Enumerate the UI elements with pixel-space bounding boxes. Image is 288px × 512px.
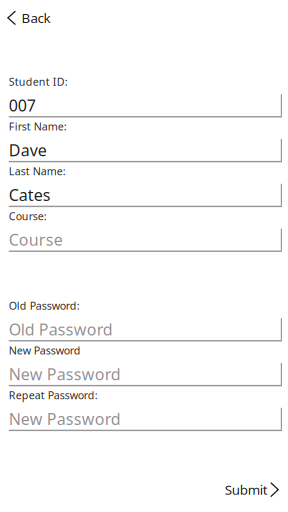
button[interactable]: Old Password: <box>9 297 282 341</box>
button[interactable]: Back <box>0 0 288 31</box>
button[interactable]: Submit <box>215 475 288 504</box>
button[interactable]: New Password <box>9 341 282 386</box>
staticText: Dave <box>9 139 47 160</box>
staticText: Back <box>21 9 50 27</box>
staticText: Old Password <box>9 318 113 340</box>
button[interactable]: First Name: <box>9 117 282 162</box>
staticText: First Name: <box>9 119 67 133</box>
staticText: New Password <box>9 363 121 384</box>
staticText: Course: <box>9 209 47 223</box>
staticText: Student ID: <box>9 74 68 89</box>
staticText: Repeat Password: <box>9 388 98 402</box>
staticText: New Password <box>9 408 121 429</box>
staticText: Cates <box>9 184 51 205</box>
staticText: Last Name: <box>9 164 66 178</box>
staticText: Submit <box>225 481 268 498</box>
staticText: 007 <box>9 94 36 116</box>
button[interactable]: Repeat Password: <box>9 386 282 431</box>
button[interactable]: Student ID: <box>9 73 282 117</box>
button[interactable]: Course: <box>9 207 282 252</box>
staticText: Course <box>9 229 63 250</box>
button[interactable]: Last Name: <box>9 162 282 207</box>
staticText: New Password <box>9 343 81 357</box>
staticText: Old Password: <box>9 298 80 313</box>
